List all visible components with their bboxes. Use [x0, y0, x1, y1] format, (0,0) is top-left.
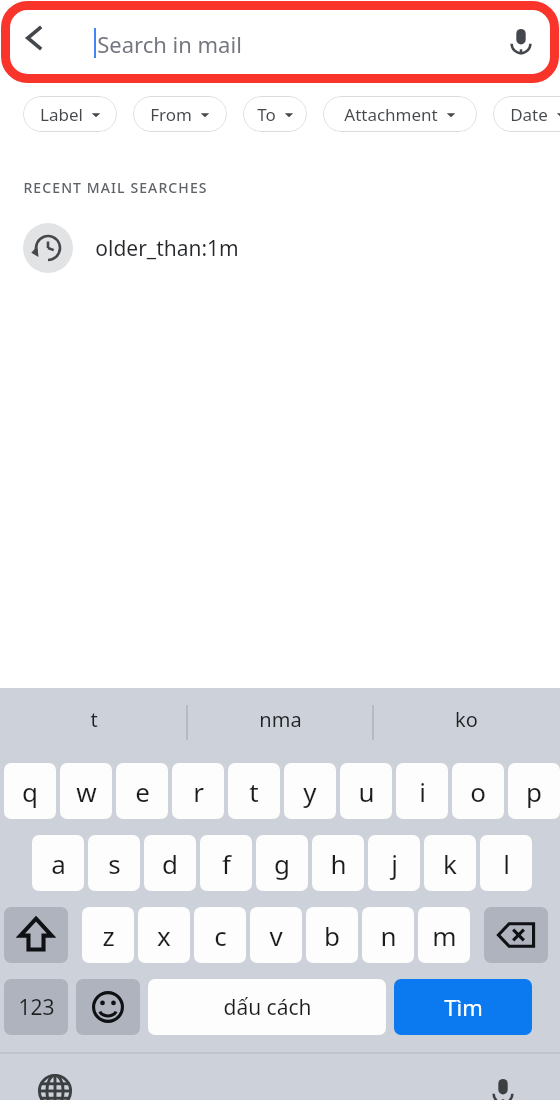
button[interactable]: z	[82, 907, 134, 963]
button[interactable]: t	[228, 763, 280, 819]
staticText: y	[303, 774, 317, 809]
button[interactable]: v	[250, 907, 302, 963]
button[interactable]: d	[144, 835, 196, 891]
staticText: k	[443, 846, 457, 881]
staticText: dấu cách	[223, 993, 312, 1022]
staticText: e	[135, 774, 150, 809]
button[interactable]: Voice input	[478, 1066, 528, 1100]
button[interactable]: n	[362, 907, 414, 963]
button[interactable]: p	[508, 763, 560, 819]
button[interactable]: nma	[187, 688, 373, 750]
button[interactable]: o	[452, 763, 504, 819]
button[interactable]: g	[256, 835, 308, 891]
button[interactable]: older_than:1m	[0, 213, 560, 283]
button[interactable]: b	[306, 907, 358, 963]
button[interactable]: u	[340, 763, 392, 819]
button[interactable]: j	[368, 835, 420, 891]
staticText: c	[214, 918, 227, 953]
button[interactable]: f	[200, 835, 252, 891]
button[interactable]: q	[4, 763, 56, 819]
staticText: older_than:1m	[95, 234, 239, 263]
staticText: b	[324, 918, 340, 953]
staticText: To	[257, 103, 276, 126]
staticText: p	[526, 774, 542, 809]
button[interactable]: dấu cách	[148, 979, 386, 1035]
staticText: o	[470, 774, 486, 809]
staticText: u	[358, 774, 375, 809]
staticText: z	[102, 918, 115, 953]
staticText: t	[249, 774, 259, 809]
button[interactable]: Label	[23, 96, 117, 132]
staticText: a	[51, 846, 66, 881]
button[interactable]: y	[284, 763, 336, 819]
button[interactable]: Change keyboard language	[30, 1066, 80, 1100]
button[interactable]: Back	[0, 8, 560, 76]
staticText: Search in mail	[97, 29, 242, 59]
staticText: nma	[259, 706, 302, 733]
staticText: t	[90, 706, 98, 733]
button[interactable]: h	[312, 835, 364, 891]
staticText: f	[222, 846, 231, 881]
button[interactable]: Emoji	[76, 979, 140, 1035]
staticText: j	[391, 846, 398, 881]
staticText: From	[150, 103, 192, 126]
button[interactable]: a	[32, 835, 84, 891]
button[interactable]: c	[194, 907, 246, 963]
staticText: r	[193, 774, 204, 809]
staticText: q	[22, 774, 38, 809]
button[interactable]: Voice search	[497, 16, 545, 64]
button[interactable]: Date	[493, 96, 560, 132]
staticText: Tìm	[444, 992, 483, 1022]
staticText: ko	[455, 706, 478, 733]
staticText: x	[157, 918, 171, 953]
button[interactable]: r	[172, 763, 224, 819]
button[interactable]: Backspace	[484, 907, 548, 963]
staticText: Label	[40, 103, 83, 126]
button[interactable]: i	[396, 763, 448, 819]
staticText: RECENT MAIL SEARCHES	[23, 178, 208, 197]
button[interactable]: e	[116, 763, 168, 819]
button[interactable]: x	[138, 907, 190, 963]
staticText: l	[503, 846, 510, 881]
button[interactable]: Back	[8, 12, 60, 64]
button[interactable]: l	[480, 835, 532, 891]
button[interactable]: Shift	[4, 907, 68, 963]
staticText: d	[162, 846, 178, 881]
staticText: Attachment	[344, 103, 438, 126]
button[interactable]: t	[0, 688, 187, 750]
staticText: v	[269, 918, 283, 953]
button[interactable]: m	[418, 907, 470, 963]
button[interactable]: k	[424, 835, 476, 891]
button[interactable]: w	[60, 763, 112, 819]
staticText: g	[274, 846, 290, 881]
button[interactable]: Tìm	[394, 979, 532, 1035]
staticText: s	[108, 846, 121, 881]
button[interactable]: 123	[4, 979, 68, 1035]
button[interactable]: Attachment	[323, 96, 477, 132]
staticText: h	[330, 846, 347, 881]
staticText: i	[419, 774, 426, 809]
staticText: w	[76, 774, 97, 809]
button[interactable]: s	[88, 835, 140, 891]
button[interactable]: From	[133, 96, 227, 132]
staticText: n	[380, 918, 397, 953]
staticText: Date	[510, 103, 548, 126]
button[interactable]: ko	[373, 688, 560, 750]
staticText: m	[432, 918, 457, 953]
button[interactable]: To	[243, 96, 307, 132]
staticText: 123	[18, 993, 55, 1022]
